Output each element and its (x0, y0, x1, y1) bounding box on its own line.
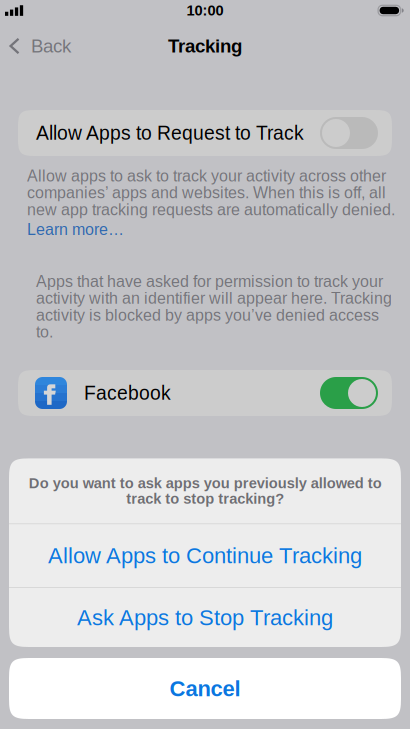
staticText: Tracking (168, 36, 242, 56)
staticText: 10:00 (186, 2, 223, 19)
button[interactable]: Allow Apps to Continue Tracking (9, 524, 401, 587)
staticText: Allow Apps to Request to Track (36, 122, 304, 144)
button[interactable]: Facebook (18, 370, 392, 416)
button[interactable]: Cancel (9, 658, 401, 719)
staticText: Back (31, 36, 71, 56)
staticText: Apps that have asked for permission to t… (36, 272, 392, 341)
staticText: Allow Apps to Continue Tracking (48, 543, 362, 568)
staticText: Allow apps to ask to track your activity… (27, 167, 395, 219)
button[interactable]: Allow Apps to Request to Track (18, 110, 392, 156)
button[interactable]: Learn more… (27, 221, 124, 238)
button[interactable]: Ask Apps to Stop Tracking (9, 588, 401, 647)
button[interactable]: Back (0, 26, 81, 66)
staticText: Ask Apps to Stop Tracking (77, 605, 333, 630)
staticText: Facebook (84, 382, 171, 404)
staticText: Do you want to ask apps you previously a… (28, 475, 381, 507)
staticText: Learn more… (27, 221, 124, 238)
staticText: Cancel (169, 676, 240, 701)
